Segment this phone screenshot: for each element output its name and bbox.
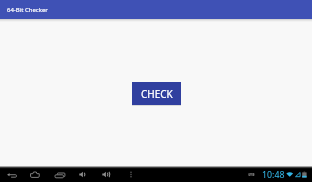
- staticText: 10:48: [262, 169, 285, 181]
- button[interactable]: Volume up: [100, 167, 112, 182]
- staticText: 64-Bit Checker: [7, 6, 48, 14]
- button[interactable]: Volume down: [77, 167, 89, 182]
- button[interactable]: 64-Bit Checker: [0, 0, 312, 19]
- staticText: CHECK: [141, 87, 173, 101]
- button[interactable]: Home: [29, 167, 41, 182]
- button[interactable]: Recent apps: [54, 167, 66, 182]
- button[interactable]: More options: [125, 167, 137, 182]
- button[interactable]: CHECK: [132, 82, 181, 105]
- button[interactable]: Back: [6, 167, 18, 182]
